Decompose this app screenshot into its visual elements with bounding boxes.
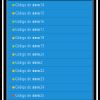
staticText: Código de alarma 17: [15, 28, 44, 32]
staticText: Código de alarma 14: [15, 3, 44, 7]
staticText: Código de alarma 15: [15, 12, 44, 15]
button[interactable]: Código de alarma 17: [7, 26, 92, 34]
button[interactable]: Código de alarma 14: [7, 1, 92, 9]
staticText: Código de alarma 22: [15, 69, 44, 73]
staticText: Código de alarma 24: [15, 86, 44, 89]
staticText: Código de alarma 19: [15, 44, 44, 48]
staticText: Código de alarma 20: [15, 53, 44, 56]
staticText: Código de alarma 23: [15, 77, 44, 81]
staticText: Código de alarma 18: [15, 36, 44, 40]
button[interactable]: Código de alarma 16: [7, 18, 92, 25]
button[interactable]: Código de alarma 21: [7, 59, 92, 67]
staticText: Código de alarma 25: [15, 94, 44, 97]
button[interactable]: Código de alarma 20: [7, 51, 92, 58]
button[interactable]: Código de alarma 24: [7, 83, 92, 91]
button[interactable]: Código de alarma 25: [7, 92, 92, 100]
button[interactable]: Código de alarma 15: [7, 9, 92, 17]
staticText: Código de alarma 16: [15, 20, 44, 23]
button[interactable]: Código de alarma 23: [7, 75, 92, 83]
staticText: Código de alarma 21: [15, 61, 44, 64]
button[interactable]: Código de alarma 18: [7, 34, 92, 42]
button[interactable]: Código de alarma 22: [7, 67, 92, 75]
button[interactable]: Código de alarma 19: [7, 42, 92, 50]
